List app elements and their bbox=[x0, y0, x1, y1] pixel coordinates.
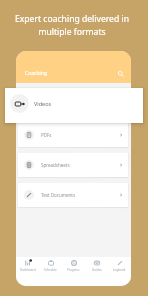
button[interactable]: Videos bbox=[5, 88, 143, 123]
staticText: Logbook bbox=[113, 268, 126, 272]
button[interactable]: Schedule bbox=[39, 257, 62, 286]
staticText: Guides bbox=[92, 268, 102, 272]
staticText: Spreadsheets bbox=[41, 162, 70, 168]
staticText: Coaching bbox=[25, 70, 47, 77]
staticText: Videos bbox=[34, 100, 52, 107]
button[interactable]: Spreadsheets bbox=[18, 153, 128, 177]
button[interactable]: Guides bbox=[85, 257, 108, 286]
staticText: Progress bbox=[67, 268, 80, 272]
staticText: Text Documents bbox=[41, 192, 76, 198]
staticText: Dashboard bbox=[20, 268, 36, 272]
button[interactable]: PDFs bbox=[18, 123, 128, 147]
staticText: Expert coaching delivered in multiple fo… bbox=[0, 13, 146, 37]
button[interactable]: Text Documents bbox=[18, 183, 128, 207]
staticText: PDFs bbox=[41, 132, 52, 138]
staticText: Schedule bbox=[44, 268, 57, 272]
button[interactable]: Search bbox=[116, 69, 125, 78]
button[interactable]: Logbook bbox=[108, 257, 131, 286]
button[interactable]: Progress bbox=[62, 257, 85, 286]
button[interactable]: Dashboard bbox=[16, 257, 39, 286]
